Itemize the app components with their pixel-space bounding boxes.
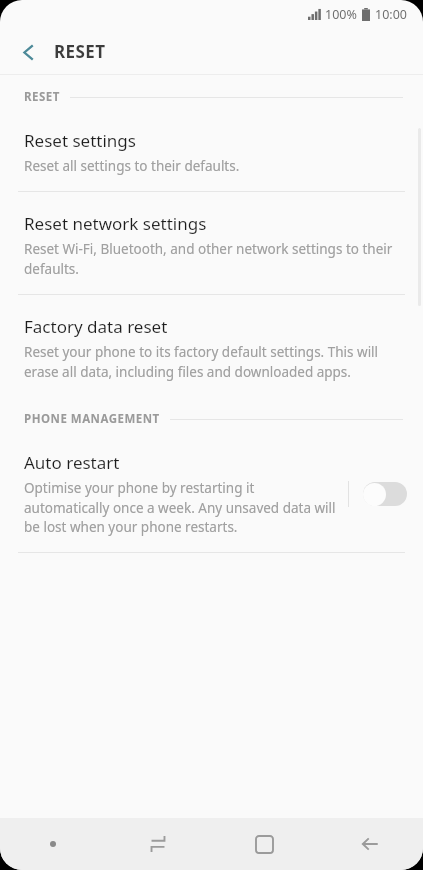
button[interactable]: Reset settings bbox=[0, 113, 423, 191]
staticText: 100% bbox=[325, 6, 357, 23]
staticText: Reset Wi-Fi, Bluetooth, and other networ… bbox=[24, 240, 395, 278]
staticText: Optimise your phone by restarting it aut… bbox=[24, 479, 338, 536]
staticText: RESET bbox=[24, 89, 60, 105]
button[interactable]: Auto restart toggle bbox=[363, 481, 407, 507]
staticText: Auto restart bbox=[24, 451, 120, 474]
button[interactable]: Auto restart bbox=[0, 435, 423, 552]
staticText: Factory data reset bbox=[24, 315, 168, 338]
staticText: Reset your phone to its factory default … bbox=[24, 343, 395, 381]
button[interactable]: Home bbox=[211, 818, 317, 870]
button[interactable]: Back bbox=[317, 818, 423, 870]
staticText: Reset network settings bbox=[24, 212, 207, 235]
button[interactable]: Factory data reset bbox=[0, 295, 423, 397]
button[interactable]: Reset network settings bbox=[0, 192, 423, 294]
staticText: Reset settings bbox=[24, 129, 136, 152]
staticText: PHONE MANAGEMENT bbox=[24, 411, 160, 427]
button[interactable]: Back bbox=[8, 32, 48, 72]
button[interactable]: Recent apps bbox=[105, 818, 211, 870]
staticText: Reset all settings to their defaults. bbox=[24, 157, 240, 175]
staticText: RESET bbox=[54, 40, 106, 63]
staticText: 10:00 bbox=[375, 6, 407, 23]
